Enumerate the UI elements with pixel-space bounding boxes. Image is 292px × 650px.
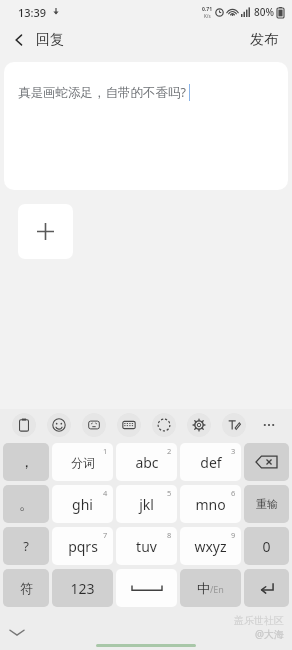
button[interactable]: mno [180,485,241,523]
button[interactable]: Emoji [41,409,76,441]
button[interactable]: Space [116,569,177,607]
button[interactable]: ? [3,527,49,565]
button[interactable]: Resize [146,409,181,441]
button[interactable]: tuv [116,527,177,565]
button[interactable]: Back [0,24,74,56]
staticText: 盖乐世社区 [234,614,284,627]
button[interactable]: 重输 [244,485,289,523]
button[interactable]: Settings [181,409,216,441]
button[interactable]: Kaomoji [76,409,111,441]
staticText: @大海 [255,627,284,641]
staticText: 1 [103,446,108,456]
button[interactable]: jkl [116,485,177,523]
staticText: ， [19,453,34,472]
staticText: jkl [139,495,154,514]
button[interactable]: ， [3,443,49,481]
staticText: 回复 [36,31,64,49]
button[interactable]: 123 [52,569,113,607]
staticText: ? [23,537,29,555]
button[interactable]: def [180,443,241,481]
staticText: wxyz [194,537,227,556]
button[interactable]: Enter [244,569,289,607]
staticText: 发布 [250,31,278,49]
button[interactable]: 真是画蛇添足，自带的不香吗? [4,62,288,190]
button[interactable]: Keyboard layout [111,409,146,441]
staticText: 4 [103,488,108,498]
staticText: 分词 [71,455,95,470]
staticText: K/s [204,13,211,19]
button[interactable]: Backspace [244,443,289,481]
button[interactable]: ghi [52,485,113,523]
staticText: abc [135,453,159,472]
button[interactable]: Clipboard [6,409,41,441]
button[interactable]: 符 [3,569,49,607]
staticText: def [200,453,222,472]
staticText: 2 [167,446,172,456]
staticText: 123 [70,579,95,598]
staticText: 0 [262,537,271,556]
button[interactable]: wxyz [180,527,241,565]
button[interactable]: Add image [18,204,73,259]
staticText: 7 [103,530,108,540]
button[interactable]: More [251,409,286,441]
staticText: /En [210,583,224,595]
staticText: 8 [167,530,172,540]
staticText: ghi [72,495,93,514]
staticText: 13:39 [18,5,47,20]
button[interactable]: Handwriting [216,409,251,441]
staticText: 0.71 [202,6,212,13]
staticText: 5 [167,488,172,498]
button[interactable]: 中 [180,569,241,607]
button[interactable]: 0 [244,527,289,565]
staticText: 6 [231,488,236,498]
other: Hide keyboard [10,628,24,637]
staticText: tuv [136,537,157,556]
staticText: pqrs [68,537,98,556]
staticText: 真是画蛇添足，自带的不香吗? [18,84,186,101]
other: Back [12,33,26,47]
staticText: 。 [19,495,34,514]
button[interactable]: pqrs [52,527,113,565]
staticText: mno [195,495,226,514]
staticText: 3 [231,446,236,456]
staticText: 中 [197,580,210,596]
staticText: 9 [231,530,236,540]
button[interactable]: 发布 [236,24,292,56]
button[interactable]: 分词 [52,443,113,481]
staticText: 80% [254,5,274,19]
staticText: 重输 [256,497,278,511]
staticText: 符 [20,580,33,596]
button[interactable]: abc [116,443,177,481]
button[interactable]: 。 [3,485,49,523]
